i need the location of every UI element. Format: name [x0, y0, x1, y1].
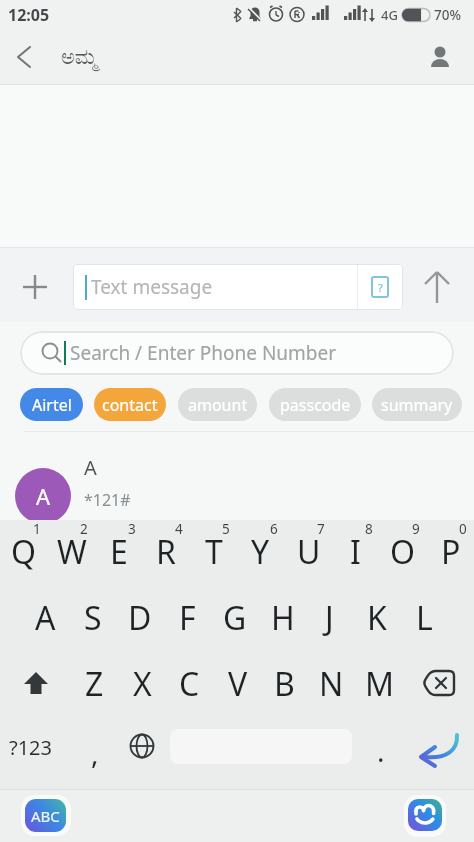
- staticText: amount: [188, 394, 248, 416]
- button[interactable]: V: [214, 662, 261, 706]
- staticText: H: [271, 596, 295, 640]
- staticText: S: [84, 596, 102, 640]
- button[interactable]: B: [261, 662, 308, 706]
- button[interactable]: ?: [371, 276, 389, 298]
- staticText: ABC: [31, 806, 60, 826]
- staticText: 6: [270, 520, 278, 538]
- staticText: Airtel: [32, 394, 72, 416]
- staticText: 3: [128, 520, 136, 538]
- staticText: O: [390, 530, 415, 574]
- button[interactable]: Y: [237, 530, 284, 574]
- button[interactable]: M: [356, 662, 403, 706]
- staticText: V: [228, 662, 248, 706]
- button[interactable]: [73, 264, 403, 310]
- staticText: A: [84, 454, 97, 480]
- staticText: contact: [102, 394, 158, 416]
- button[interactable]: amount: [178, 388, 257, 421]
- button[interactable]: ABC: [25, 799, 66, 832]
- button[interactable]: U: [285, 530, 332, 574]
- button[interactable]: [20, 331, 454, 375]
- button[interactable]: H: [259, 596, 306, 640]
- button[interactable]: contact: [94, 388, 166, 421]
- button[interactable]: O: [379, 530, 426, 574]
- button[interactable]: I: [332, 530, 379, 574]
- staticText: A: [36, 481, 51, 511]
- staticText: T: [205, 530, 223, 574]
- staticText: ?: [378, 280, 383, 295]
- staticText: .: [377, 732, 385, 766]
- staticText: E: [110, 530, 128, 574]
- staticText: B: [274, 662, 295, 706]
- button[interactable]: [413, 726, 461, 768]
- button[interactable]: [418, 662, 460, 704]
- button[interactable]: [16, 664, 56, 704]
- button[interactable]: K: [353, 596, 400, 640]
- staticText: ,: [91, 734, 99, 768]
- staticText: X: [133, 662, 152, 706]
- staticText: G: [223, 596, 247, 640]
- staticText: M: [365, 662, 395, 706]
- button[interactable]: [127, 731, 157, 761]
- staticText: ?123: [9, 734, 52, 761]
- staticText: J: [325, 596, 334, 640]
- button[interactable]: [424, 40, 456, 72]
- staticText: D: [128, 596, 152, 640]
- staticText: Search / Enter Phone Number: [70, 340, 337, 366]
- staticText: passcode: [280, 394, 351, 416]
- staticText: P: [441, 530, 461, 574]
- button[interactable]: J: [306, 596, 353, 640]
- button[interactable]: X: [119, 662, 166, 706]
- staticText: F: [179, 596, 196, 640]
- button[interactable]: C: [166, 662, 213, 706]
- button[interactable]: Z: [71, 662, 118, 706]
- button[interactable]: [8, 41, 40, 73]
- staticText: C: [179, 662, 200, 706]
- staticText: Text message: [91, 274, 213, 300]
- staticText: I: [350, 530, 361, 574]
- staticText: 70%: [434, 6, 461, 24]
- staticText: ಅಮ್ಮ: [61, 47, 98, 68]
- button[interactable]: T: [190, 530, 237, 574]
- button[interactable]: R: [142, 530, 189, 574]
- staticText: 12:05: [8, 4, 50, 26]
- button[interactable]: passcode: [269, 388, 361, 421]
- staticText: Q: [11, 530, 36, 574]
- button[interactable]: W: [48, 530, 95, 574]
- button[interactable]: D: [116, 596, 163, 640]
- button[interactable]: P: [427, 530, 474, 574]
- staticText: L: [416, 596, 433, 640]
- staticText: Z: [85, 662, 104, 706]
- button[interactable]: S: [69, 596, 116, 640]
- staticText: 7: [317, 520, 325, 538]
- staticText: 9: [412, 520, 420, 538]
- button[interactable]: L: [401, 596, 448, 640]
- staticText: A: [35, 596, 56, 640]
- staticText: 4: [175, 520, 183, 538]
- staticText: 8: [365, 520, 373, 538]
- staticText: W: [57, 530, 87, 574]
- button[interactable]: A: [22, 596, 69, 640]
- staticText: *121#: [84, 489, 131, 511]
- staticText: K: [367, 596, 387, 640]
- staticText: 4G: [381, 6, 398, 24]
- button[interactable]: Airtel: [20, 388, 83, 421]
- staticText: 2: [80, 520, 88, 538]
- button[interactable]: A: [15, 468, 71, 524]
- staticText: R: [156, 530, 176, 574]
- staticText: Y: [251, 530, 270, 574]
- button[interactable]: E: [95, 530, 142, 574]
- button[interactable]: summary: [372, 388, 462, 421]
- button[interactable]: F: [164, 596, 211, 640]
- button[interactable]: [421, 271, 453, 303]
- staticText: 5: [222, 520, 230, 538]
- button[interactable]: G: [211, 596, 258, 640]
- staticText: 1: [33, 520, 41, 538]
- staticText: U: [297, 530, 321, 574]
- staticText: N: [319, 662, 344, 706]
- button[interactable]: Q: [0, 530, 47, 574]
- button[interactable]: [19, 271, 51, 303]
- button[interactable]: N: [308, 662, 355, 706]
- staticText: summary: [381, 394, 453, 416]
- button[interactable]: [408, 799, 442, 831]
